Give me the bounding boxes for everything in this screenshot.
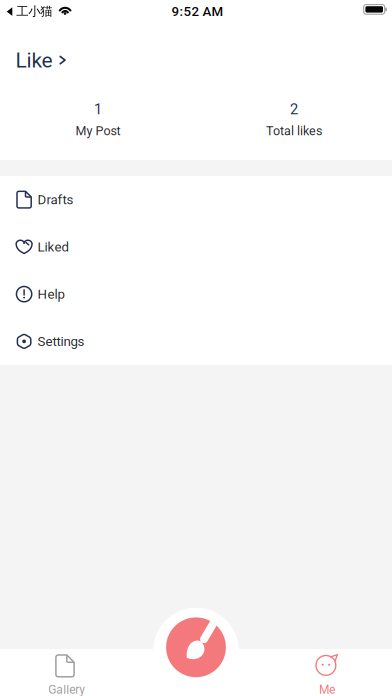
- staticText: Settings: [38, 334, 85, 349]
- staticText: 工小猫: [16, 4, 52, 19]
- button[interactable]: Settings: [0, 318, 392, 365]
- staticText: Me: [319, 682, 335, 696]
- button[interactable]: Help: [0, 270, 392, 318]
- button[interactable]: New drawing: [153, 608, 239, 694]
- button[interactable]: Liked: [0, 223, 392, 270]
- staticText: My Post: [75, 124, 120, 138]
- staticText: 1: [94, 101, 102, 118]
- button[interactable]: Me: [262, 649, 392, 696]
- button[interactable]: Like: [0, 48, 72, 72]
- staticText: Help: [38, 286, 65, 302]
- staticText: Drafts: [38, 192, 74, 207]
- button[interactable]: Gallery: [0, 649, 130, 696]
- button[interactable]: Drafts: [0, 176, 392, 223]
- staticText: 2: [290, 101, 298, 118]
- staticText: 9:52 AM: [171, 4, 223, 19]
- staticText: Gallery: [48, 682, 85, 696]
- staticText: Liked: [38, 239, 70, 255]
- staticText: Total likes: [266, 124, 322, 138]
- staticText: Like: [15, 48, 52, 72]
